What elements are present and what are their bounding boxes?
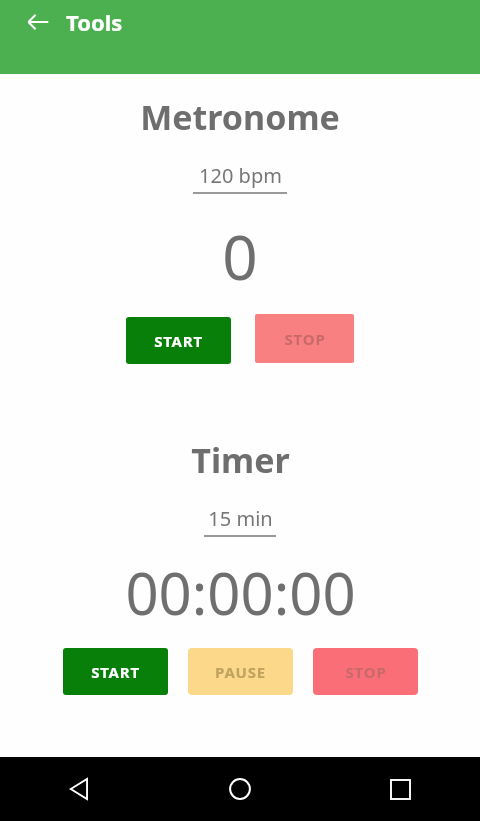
button[interactable]: START (63, 648, 168, 695)
staticText: Metronome (140, 94, 340, 140)
button[interactable]: START (126, 317, 231, 364)
staticText: STOP (284, 329, 326, 349)
button[interactable]: Back (16, 0, 60, 44)
staticText: 0 (222, 214, 258, 298)
button[interactable]: 120 bpm (193, 162, 287, 194)
staticText: PAUSE (215, 662, 266, 682)
staticText: Tools (66, 7, 123, 37)
staticText: 00:00:00 (125, 553, 356, 632)
button[interactable]: PAUSE (188, 648, 293, 695)
staticText: START (154, 331, 203, 351)
staticText: 15 min (208, 505, 273, 532)
staticText: STOP (345, 662, 387, 682)
staticText: START (91, 662, 140, 682)
button[interactable]: STOP (313, 648, 418, 695)
button[interactable]: Recent apps (320, 757, 480, 821)
staticText: Timer (191, 437, 290, 483)
button[interactable]: Back (0, 757, 160, 821)
button[interactable]: 15 min (204, 505, 276, 537)
button[interactable]: Home (160, 757, 320, 821)
button[interactable]: STOP (255, 314, 354, 363)
staticText: 120 bpm (199, 162, 282, 189)
